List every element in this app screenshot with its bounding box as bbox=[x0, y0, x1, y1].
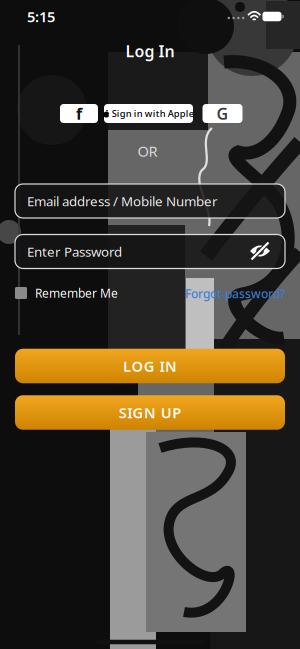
staticText: Sign in with Apple bbox=[112, 107, 194, 120]
button[interactable]: Sign in with Google bbox=[202, 104, 242, 123]
staticText: 5:15 bbox=[27, 7, 55, 26]
button[interactable]: Sign in with Facebook bbox=[60, 104, 98, 123]
button[interactable]: Enter Password bbox=[15, 234, 285, 268]
button[interactable]: Show password bbox=[249, 240, 270, 261]
button[interactable]: SIGN UP bbox=[15, 395, 285, 430]
staticText: Email address / Mobile Number bbox=[27, 192, 218, 210]
button[interactable]: LOG IN bbox=[15, 349, 285, 383]
staticText: Enter Password bbox=[27, 243, 122, 260]
staticText: Log In bbox=[125, 40, 174, 62]
button[interactable]: Sign in with Apple bbox=[104, 104, 193, 123]
button[interactable]: Forgot password? bbox=[185, 285, 285, 301]
staticText: Forgot password? bbox=[185, 285, 285, 301]
staticText: OR bbox=[137, 141, 157, 161]
button[interactable]: Remember Me bbox=[15, 285, 118, 301]
staticText: Remember Me bbox=[35, 285, 118, 301]
staticText: G bbox=[216, 103, 228, 124]
staticText: f bbox=[76, 103, 82, 124]
staticText: LOG IN bbox=[123, 356, 177, 376]
button[interactable]: Email address / Mobile Number bbox=[15, 184, 285, 218]
staticText: SIGN UP bbox=[119, 403, 181, 422]
